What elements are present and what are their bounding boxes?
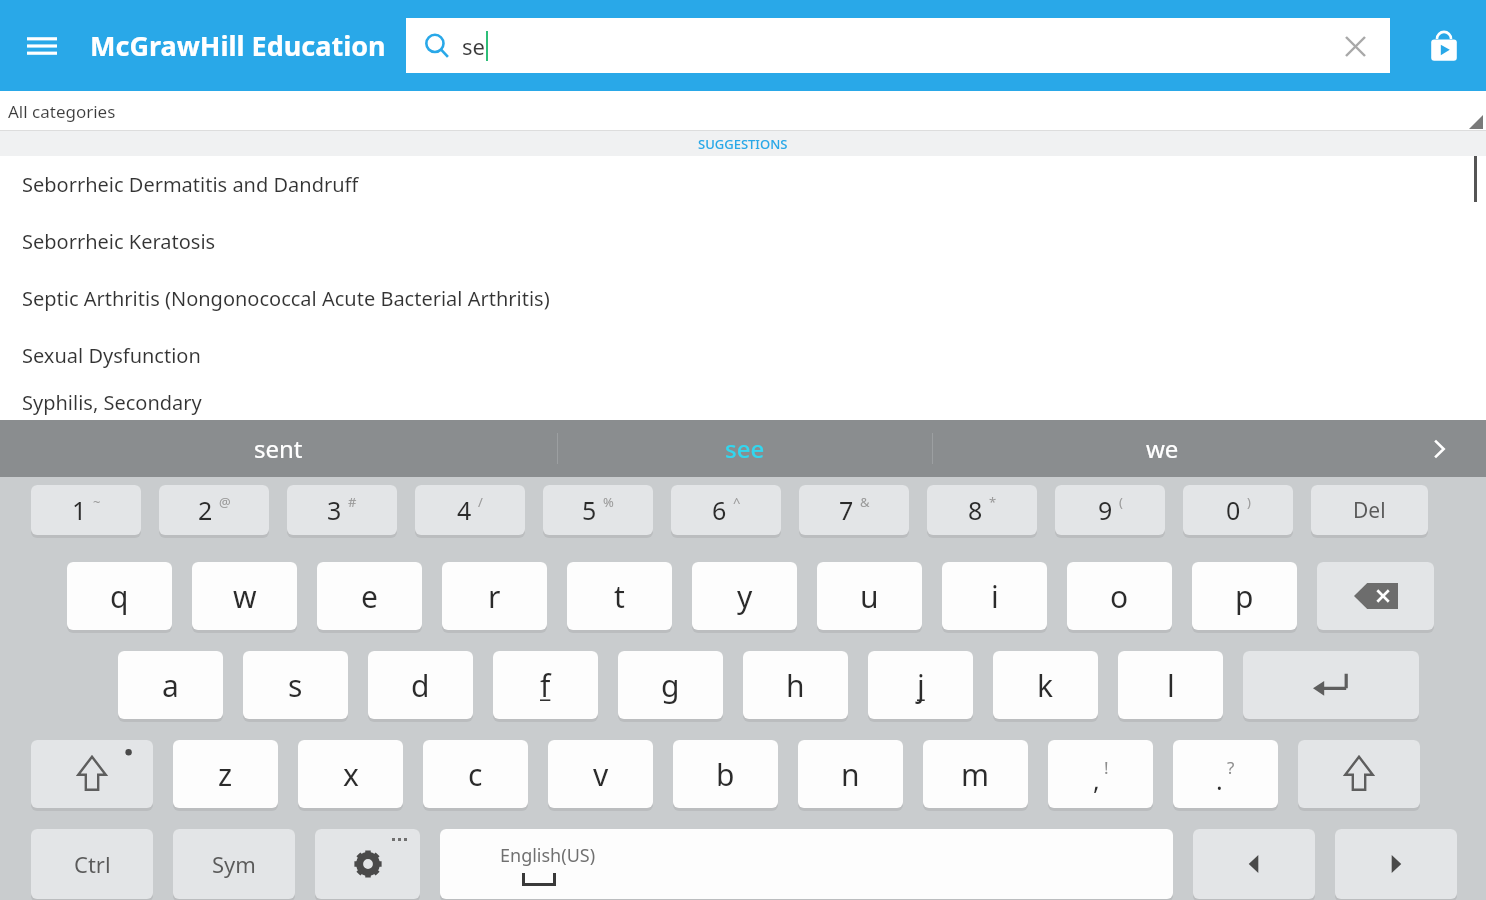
button[interactable]: 5 (543, 485, 653, 535)
staticText: z (218, 754, 233, 795)
button[interactable]: Shift (1298, 740, 1420, 808)
staticText: sent (254, 432, 303, 465)
button[interactable]: All categories (0, 91, 1486, 131)
button[interactable]: d (368, 651, 473, 719)
button[interactable]: m (923, 740, 1028, 808)
button[interactable]: t (567, 562, 672, 630)
button[interactable]: Open navigation menu (14, 18, 70, 74)
button[interactable]: 8 (927, 485, 1037, 535)
button[interactable]: k (993, 651, 1098, 719)
staticText: 2 (198, 493, 213, 527)
button[interactable]: Shift (31, 740, 153, 808)
button[interactable]: u (817, 562, 922, 630)
button[interactable]: Move cursor right (1335, 829, 1457, 899)
button[interactable]: Clear search (1338, 29, 1372, 63)
button[interactable]: sent (0, 420, 557, 477)
staticText: Ctrl (74, 849, 111, 879)
button[interactable]: w (192, 562, 297, 630)
button[interactable]: we (933, 420, 1391, 477)
staticText: v (593, 754, 609, 795)
staticText: Syphilis, Secondary (22, 389, 202, 416)
button[interactable]: v (548, 740, 653, 808)
button[interactable]: e (317, 562, 422, 630)
button[interactable]: Backspace (1317, 562, 1434, 630)
button[interactable]: see (558, 420, 932, 477)
staticText: r (488, 576, 501, 617)
button[interactable]: h (743, 651, 848, 719)
staticText: we (1146, 432, 1179, 465)
button[interactable]: l (1118, 651, 1223, 719)
button[interactable]: b (673, 740, 778, 808)
staticText: 7 (839, 493, 854, 527)
button[interactable]: p (1192, 562, 1297, 630)
staticText: h (786, 665, 805, 706)
staticText: u (860, 576, 879, 617)
staticText: g (661, 665, 680, 706)
staticText: McGrawHill Education (90, 27, 386, 64)
staticText: i (991, 576, 999, 617)
button[interactable]: Move cursor left (1193, 829, 1315, 899)
button[interactable]: z (173, 740, 278, 808)
staticText: 0 (1226, 493, 1241, 527)
button[interactable]: 7 (799, 485, 909, 535)
button[interactable]: Seborrheic Keratosis (0, 213, 1486, 270)
button[interactable]: n (798, 740, 903, 808)
button[interactable]: Keyboard settings (315, 829, 420, 899)
staticText: q (110, 576, 129, 617)
button[interactable]: 0 (1183, 485, 1293, 535)
button[interactable]: Syphilis, Secondary (0, 384, 1486, 420)
button[interactable]: y (692, 562, 797, 630)
button[interactable]: 3 (287, 485, 397, 535)
button[interactable]: j (868, 651, 973, 719)
button[interactable]: Space (440, 829, 1173, 899)
button[interactable]: , (1048, 740, 1153, 808)
button[interactable]: 1 (31, 485, 141, 535)
button[interactable]: s (243, 651, 348, 719)
staticText: ) (1247, 493, 1251, 511)
staticText: f (540, 665, 551, 706)
button[interactable]: 9 (1055, 485, 1165, 535)
button[interactable]: r (442, 562, 547, 630)
staticText: k (1037, 665, 1054, 706)
staticText: All categories (8, 100, 116, 123)
button[interactable]: x (298, 740, 403, 808)
button[interactable]: a (118, 651, 223, 719)
button[interactable]: se (406, 18, 1390, 73)
button[interactable]: Septic Arthritis (Nongonococcal Acute Ba… (0, 270, 1486, 327)
staticText: # (348, 493, 357, 511)
button[interactable]: q (67, 562, 172, 630)
staticText: j (917, 665, 925, 706)
button[interactable]: Google Play Store (1416, 18, 1472, 74)
staticText: e (361, 576, 378, 617)
staticText: ( (1119, 493, 1123, 511)
button[interactable]: . (1173, 740, 1278, 808)
button[interactable]: Del (1311, 485, 1428, 535)
button[interactable]: Seborrheic Dermatitis and Dandruff (0, 156, 1486, 213)
staticText: ^ (733, 493, 741, 511)
staticText: see (725, 432, 765, 465)
staticText: 3 (327, 493, 342, 527)
staticText: English(US) (500, 843, 596, 868)
button[interactable]: 2 (159, 485, 269, 535)
staticText: Seborrheic Dermatitis and Dandruff (22, 171, 359, 198)
staticText: & (860, 493, 870, 511)
button[interactable]: g (618, 651, 723, 719)
staticText: s (288, 665, 303, 706)
staticText: . (1216, 763, 1223, 797)
button[interactable]: c (423, 740, 528, 808)
button[interactable]: 4 (415, 485, 525, 535)
button[interactable]: o (1067, 562, 1172, 630)
button[interactable]: f (493, 651, 598, 719)
staticText: se (462, 31, 485, 61)
button[interactable]: 6 (671, 485, 781, 535)
button[interactable]: Sexual Dysfunction (0, 327, 1486, 384)
button[interactable]: Enter (1243, 651, 1419, 719)
staticText: n (841, 754, 860, 795)
button[interactable]: Sym (173, 829, 295, 899)
button[interactable]: Ctrl (31, 829, 153, 899)
button[interactable]: i (942, 562, 1047, 630)
staticText: x (343, 754, 359, 795)
staticText: p (1235, 576, 1254, 617)
staticText: 4 (457, 493, 472, 527)
button[interactable]: More suggestions (1391, 420, 1486, 477)
